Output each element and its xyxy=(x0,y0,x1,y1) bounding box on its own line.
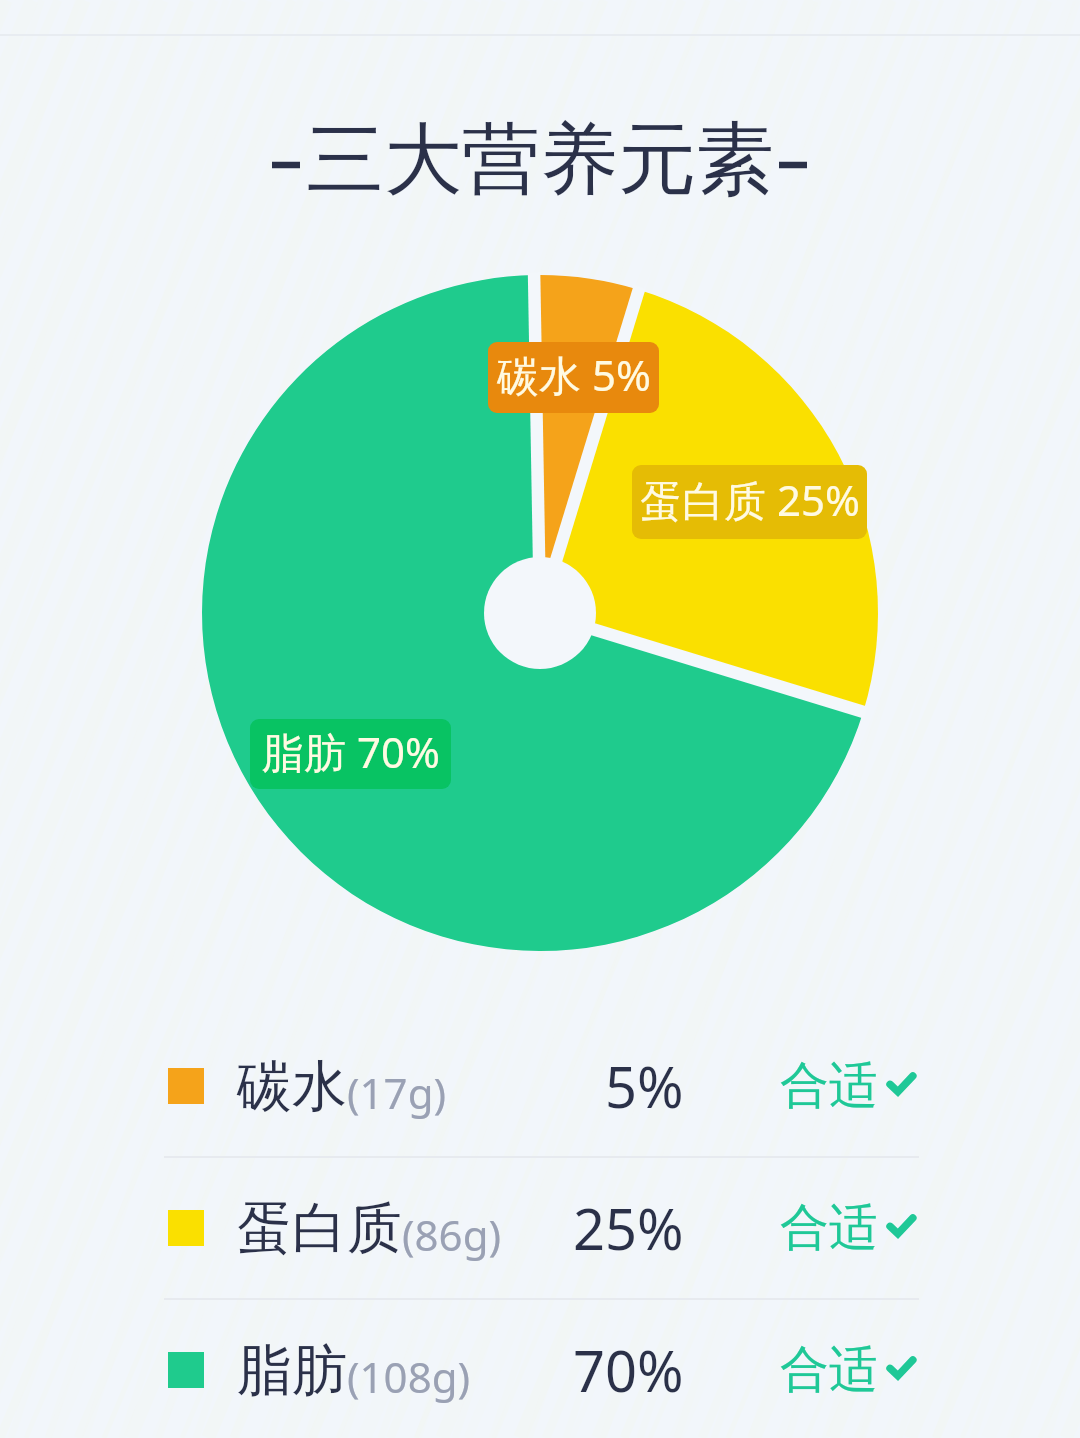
staticText: 碳水 xyxy=(237,1052,347,1121)
staticText: (86g) xyxy=(402,1206,502,1263)
other: 三大营养元素饼图：碳水 5%，蛋白质 25%，脂肪 70% xyxy=(0,0,1080,1438)
staticText: 碳水 5% xyxy=(497,346,651,403)
staticText: 合适 xyxy=(780,1339,878,1401)
other: 合适 xyxy=(886,1072,913,1096)
staticText: 蛋白质 25% xyxy=(640,471,860,528)
staticText: 70% xyxy=(573,1332,684,1408)
staticText: 合适 xyxy=(780,1055,878,1117)
staticText: 合适 xyxy=(780,1197,878,1259)
button[interactable]: 碳水 xyxy=(0,1015,1080,1157)
staticText: 脂肪 70% xyxy=(262,723,440,780)
staticText: 5% xyxy=(605,1048,684,1124)
other: 合适 xyxy=(886,1214,913,1238)
staticText: 蛋白质 xyxy=(237,1194,402,1263)
staticText: 三大营养元素 xyxy=(306,111,774,209)
staticText: (17g) xyxy=(347,1064,447,1121)
staticText: 25% xyxy=(573,1190,684,1266)
staticText: (108g) xyxy=(347,1348,471,1405)
staticText: 脂肪 xyxy=(237,1336,347,1405)
button[interactable]: 脂肪 xyxy=(0,1299,1080,1438)
button[interactable]: 蛋白质 xyxy=(0,1157,1080,1299)
other: 合适 xyxy=(886,1356,913,1380)
